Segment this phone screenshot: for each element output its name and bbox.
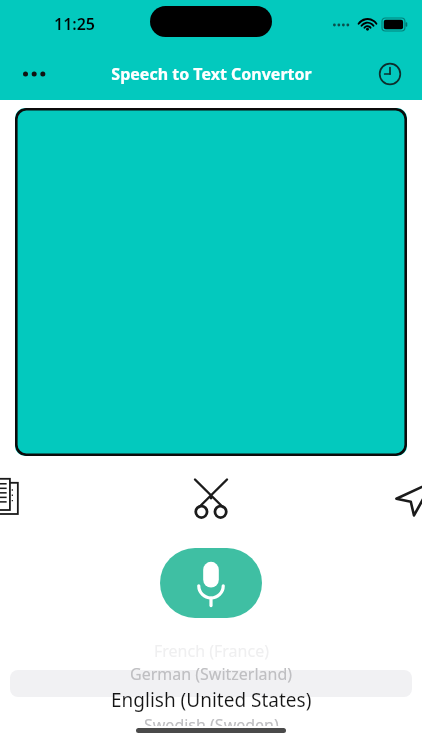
staticText: Swedish (Sweden) (144, 714, 279, 726)
staticText: English (United States) (111, 687, 312, 713)
button[interactable]: English (United States) (0, 686, 422, 714)
button[interactable]: Start recording (160, 548, 262, 618)
button[interactable]: Swedish (Sweden) (0, 714, 422, 726)
button[interactable]: Send (281, 470, 422, 526)
button[interactable]: Copy (0, 470, 140, 526)
staticText: Speech to Text Convertor (111, 63, 312, 85)
staticText: German (Switzerland) (130, 663, 293, 685)
button[interactable]: More options (14, 52, 58, 96)
button[interactable]: German (Switzerland) (0, 662, 422, 686)
button[interactable]: Cut (140, 470, 281, 526)
button[interactable]: History (368, 52, 412, 96)
staticText: 11:25 (54, 13, 96, 35)
button[interactable] (15, 108, 407, 456)
staticText: French (France) (154, 640, 269, 662)
